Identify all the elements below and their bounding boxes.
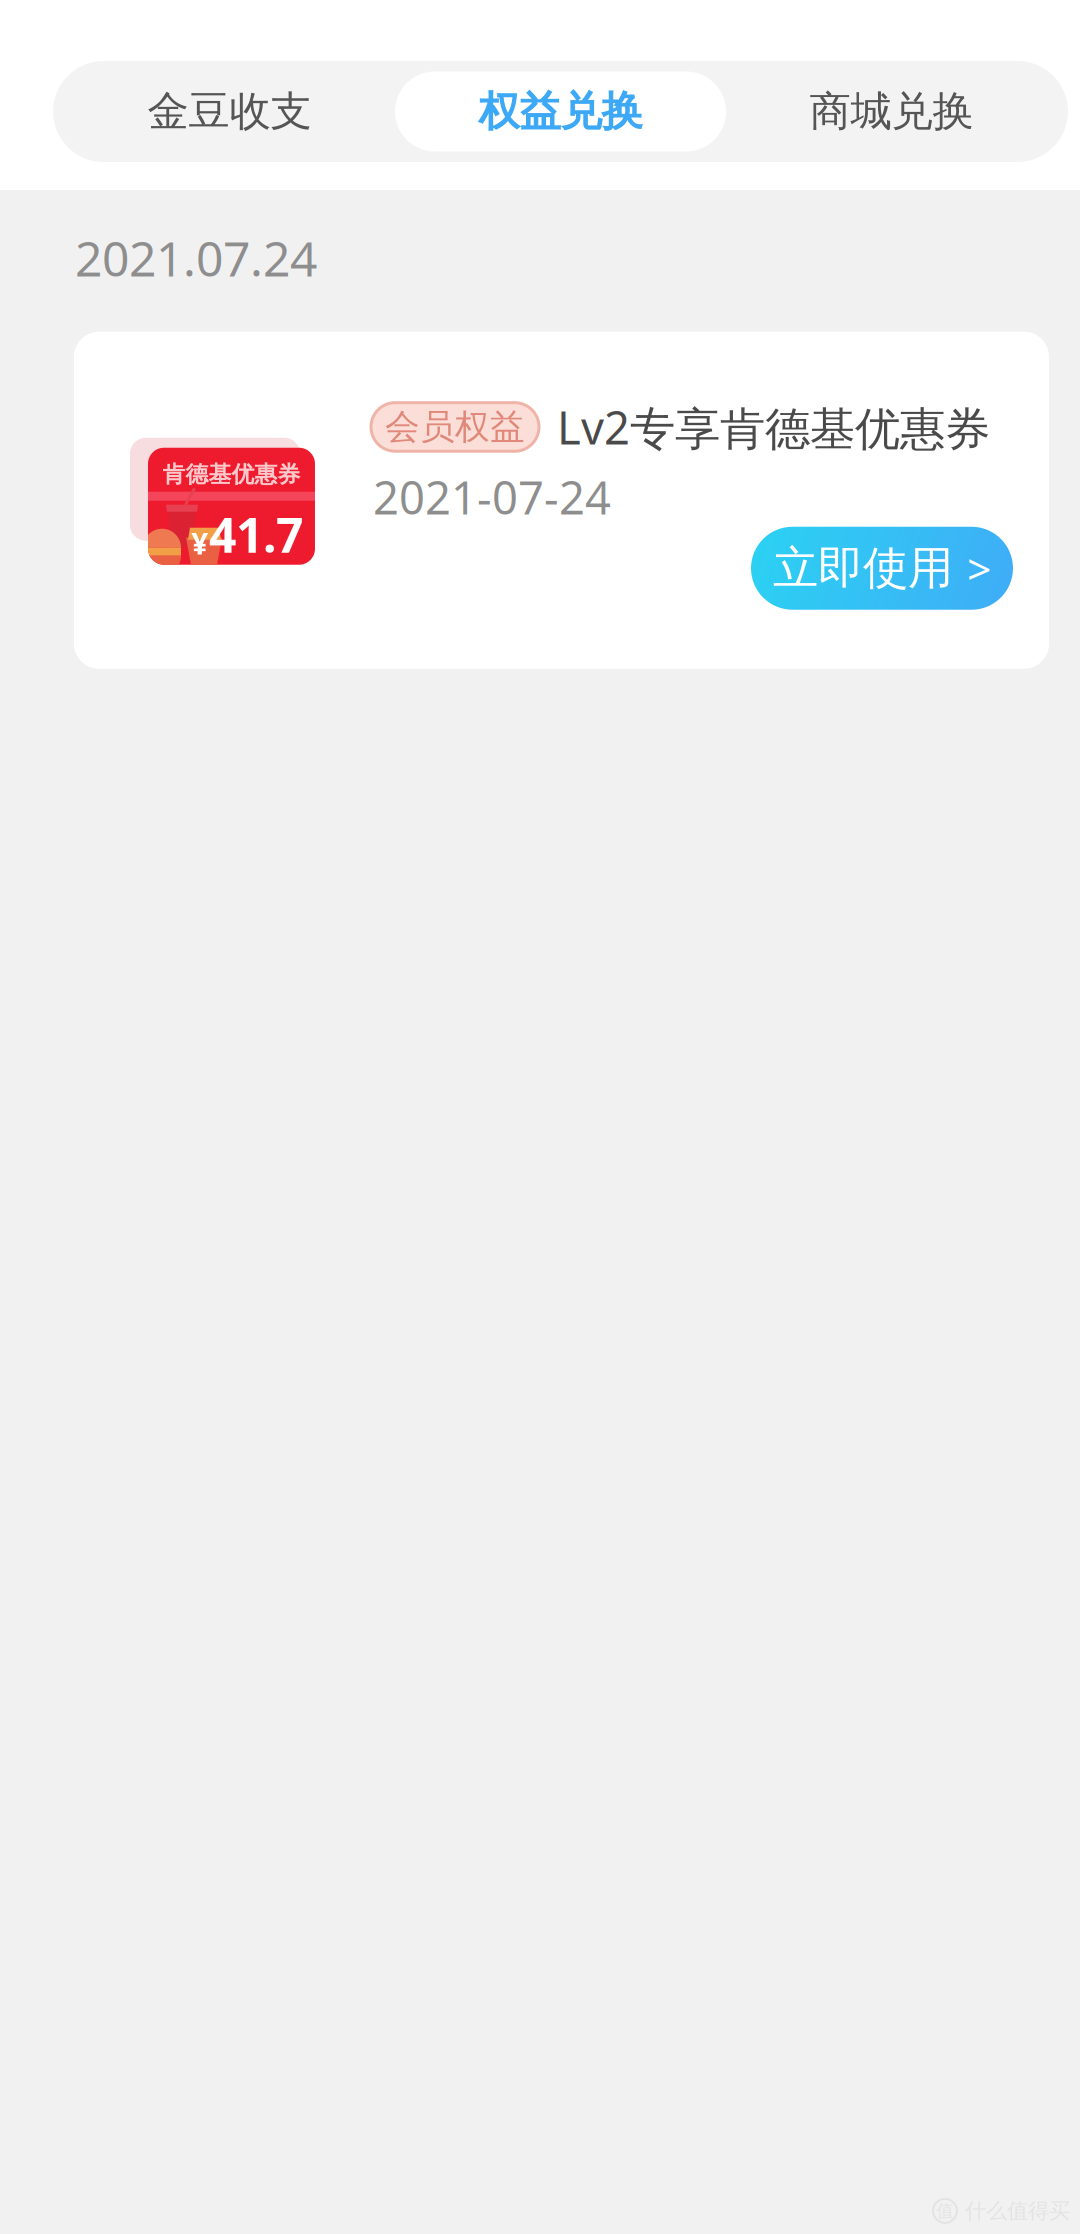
staticText: >: [967, 540, 991, 597]
staticText: 权益兑换: [478, 86, 642, 137]
staticText: 2021.07.24: [75, 226, 317, 290]
staticText: ¥: [191, 522, 209, 563]
staticText: 金豆收支: [147, 86, 311, 137]
staticText: 会员权益: [385, 406, 525, 448]
button[interactable]: 立即使用: [751, 527, 1013, 610]
staticText: 什么值得买: [965, 2198, 1070, 2224]
button[interactable]: 商城兑换: [726, 71, 1057, 151]
button[interactable]: 权益兑换: [395, 71, 726, 151]
button[interactable]: 金豆收支: [64, 71, 395, 151]
staticText: 值: [936, 2200, 953, 2222]
button[interactable]: 肯德基优惠券: [74, 332, 1049, 669]
staticText: 商城兑换: [809, 86, 973, 137]
staticText: 立即使用: [773, 540, 953, 596]
staticText: Lv2专享肯德基优惠券: [557, 397, 990, 457]
staticText: 2021-07-24: [373, 467, 611, 527]
staticText: 41.7: [209, 502, 303, 566]
staticText: 肯德基优惠券: [162, 460, 300, 488]
